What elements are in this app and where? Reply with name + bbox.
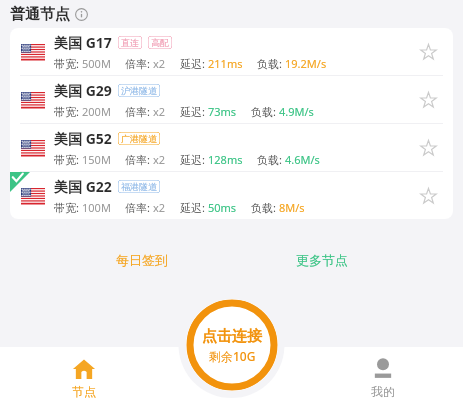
- staticText: 普通节点: [10, 5, 70, 24]
- staticText: 高配: [151, 37, 169, 48]
- staticText: 带宽:: [54, 104, 82, 119]
- staticText: 200M: [82, 104, 111, 119]
- staticText: 福港隧道: [121, 181, 157, 192]
- button[interactable]: 更多节点: [247, 252, 397, 268]
- staticText: 美国 G17: [54, 33, 112, 52]
- staticText: 带宽:: [54, 152, 82, 167]
- staticText: 美国 G29: [54, 81, 112, 100]
- button[interactable]: 美国 G29: [10, 76, 453, 123]
- staticText: 128ms: [208, 152, 243, 167]
- staticText: 50ms: [208, 200, 237, 215]
- staticText: 带宽:: [54, 200, 82, 215]
- staticText: 8M/s: [279, 200, 305, 215]
- staticText: 倍率:: [125, 152, 153, 167]
- staticText: x2: [153, 152, 166, 167]
- staticText: 点击连接: [202, 327, 262, 346]
- button[interactable]: 每日签到: [67, 252, 217, 268]
- button[interactable]: 美国 G52: [10, 124, 453, 171]
- staticText: 广港隧道: [121, 133, 157, 144]
- button[interactable]: 收藏: [411, 35, 445, 69]
- staticText: 直连: [121, 37, 139, 48]
- staticText: 延迟:: [180, 200, 208, 215]
- staticText: 19.2M/s: [285, 56, 327, 71]
- button[interactable]: 我的: [351, 357, 415, 399]
- button[interactable]: 收藏: [411, 83, 445, 117]
- staticText: 延迟:: [180, 56, 208, 71]
- staticText: 倍率:: [125, 56, 153, 71]
- staticText: 带宽:: [54, 56, 82, 71]
- staticText: 更多节点: [296, 252, 348, 268]
- staticText: 美国 G52: [54, 129, 112, 148]
- staticText: 倍率:: [125, 200, 153, 215]
- staticText: x2: [153, 104, 166, 119]
- button[interactable]: 收藏: [411, 179, 445, 213]
- staticText: 150M: [82, 152, 111, 167]
- staticText: 4.9M/s: [279, 104, 314, 119]
- staticText: 沪港隧道: [121, 85, 157, 96]
- staticText: 73ms: [208, 104, 237, 119]
- staticText: x2: [153, 56, 166, 71]
- button[interactable]: 节点: [52, 357, 116, 399]
- staticText: 负载:: [257, 152, 285, 167]
- button[interactable]: 点击连接: [186, 299, 278, 391]
- staticText: 4.6M/s: [285, 152, 320, 167]
- staticText: 我的: [371, 384, 395, 399]
- button[interactable]: 说明: [75, 8, 88, 21]
- staticText: 美国 G22: [54, 177, 112, 196]
- button[interactable]: 美国 G17: [10, 28, 453, 75]
- staticText: 500M: [82, 56, 111, 71]
- staticText: 211ms: [208, 56, 243, 71]
- staticText: 节点: [72, 384, 96, 399]
- button[interactable]: 收藏: [411, 131, 445, 165]
- staticText: 负载:: [251, 200, 279, 215]
- staticText: 100M: [82, 200, 111, 215]
- staticText: 剩余10G: [209, 348, 256, 364]
- staticText: 延迟:: [180, 152, 208, 167]
- staticText: x2: [153, 200, 166, 215]
- staticText: 负载:: [251, 104, 279, 119]
- staticText: 每日签到: [116, 252, 168, 268]
- staticText: 倍率:: [125, 104, 153, 119]
- staticText: 负载:: [257, 56, 285, 71]
- staticText: 延迟:: [180, 104, 208, 119]
- button[interactable]: 美国 G22: [10, 172, 453, 219]
